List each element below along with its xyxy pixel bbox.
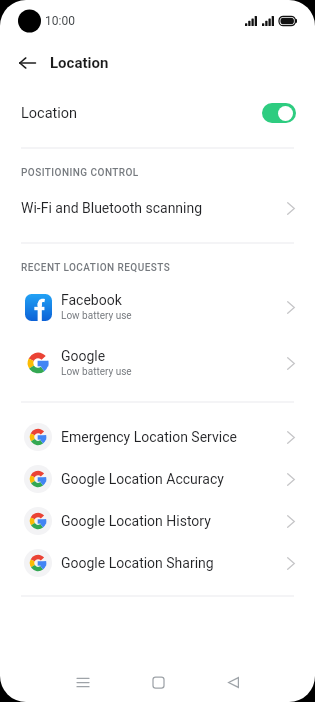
button[interactable]: Back [213,662,254,702]
staticText: Emergency Location Service [61,429,237,445]
staticText: Wi-Fi and Bluetooth scanning [21,200,203,216]
staticText: RECENT LOCATION REQUESTS [21,262,171,274]
staticText: Low battery use [61,310,132,322]
button[interactable]: Google [0,341,315,385]
button[interactable]: Back [11,47,43,79]
staticText: Location [21,105,78,122]
button[interactable]: Home [138,662,179,702]
staticText: Google [61,348,106,364]
staticText: Google Location Sharing [61,555,214,571]
button[interactable]: Location toggle [262,103,296,123]
button[interactable]: Facebook [0,285,315,329]
staticText: Facebook [61,292,122,308]
staticText: POSITIONING CONTROL [21,167,139,179]
button[interactable]: Recents [62,662,103,702]
staticText: 10:00 [45,14,75,28]
button[interactable]: Google Location Accuracy [0,458,315,500]
button[interactable]: Wi-Fi and Bluetooth scanning [0,190,315,226]
button[interactable]: Emergency Location Service [0,416,315,458]
staticText: Low battery use [61,366,132,378]
staticText: Location [50,54,109,72]
button[interactable]: Google Location Sharing [0,542,315,584]
button[interactable]: Google Location History [0,500,315,542]
staticText: Google Location Accuracy [61,471,224,487]
button[interactable]: Location [0,90,315,136]
staticText: Google Location History [61,513,211,529]
